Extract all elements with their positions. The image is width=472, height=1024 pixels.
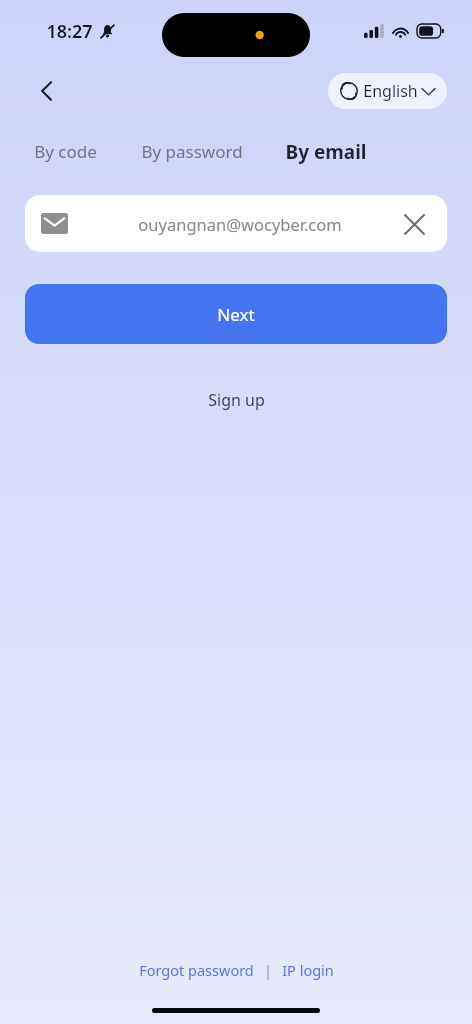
staticText: IP login (282, 960, 334, 980)
button[interactable]: English (328, 73, 447, 109)
staticText: English (363, 80, 418, 102)
staticText: Forgot password (139, 960, 254, 980)
button[interactable]: By email (279, 135, 373, 169)
staticText: | (264, 960, 272, 980)
staticText: Next (217, 303, 255, 326)
button[interactable]: IP login (278, 956, 338, 984)
button[interactable]: Sign up (194, 383, 279, 417)
button[interactable]: ouyangnan@wocyber.com (25, 195, 447, 252)
button[interactable]: By code (28, 134, 103, 169)
staticText: By password (141, 140, 243, 163)
staticText: By email (285, 139, 367, 165)
button[interactable]: Back (26, 70, 68, 112)
button[interactable]: By password (135, 134, 249, 169)
staticText: By code (34, 140, 97, 163)
staticText: Sign up (208, 389, 265, 411)
staticText: 18:27 (46, 19, 93, 44)
button[interactable]: Forgot password (135, 956, 258, 984)
button[interactable]: Clear (397, 207, 431, 241)
button[interactable]: Next (25, 284, 447, 344)
staticText: ouyangnan@wocyber.com (83, 213, 397, 235)
